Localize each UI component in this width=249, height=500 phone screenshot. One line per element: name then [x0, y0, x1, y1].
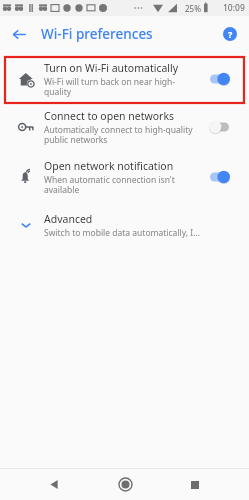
button[interactable]: Toggle on	[208, 168, 238, 186]
staticText: Wi-Fi will turn back on near high-qualit…	[44, 76, 201, 98]
button[interactable]: Open network notification	[0, 152, 249, 202]
button[interactable]: Connect to open networks	[0, 102, 249, 152]
button[interactable]: Back	[5, 20, 33, 48]
staticText: When automatic connection isn't availabl…	[44, 174, 175, 196]
staticText: Automatically connect to high-quality pu…	[44, 124, 193, 146]
staticText: Advanced	[44, 212, 93, 226]
button[interactable]: Back	[37, 469, 71, 500]
button[interactable]: Expand advanced	[0, 202, 249, 248]
button[interactable]: Turn on Wi-Fi automatically	[0, 56, 249, 102]
staticText: Turn on Wi-Fi automatically	[44, 61, 179, 75]
button[interactable]: Expand advanced	[16, 215, 36, 235]
button[interactable]: Toggle off	[208, 118, 238, 136]
staticText: Wi-Fi preferences	[41, 25, 153, 43]
staticText: ?	[228, 28, 233, 40]
staticText: 10:09	[223, 2, 245, 14]
button[interactable]: Help	[217, 21, 243, 47]
staticText: 25%	[185, 3, 201, 14]
staticText: Connect to open networks	[44, 109, 175, 123]
staticText: Open network notification	[44, 159, 174, 173]
button[interactable]: Recent apps	[178, 469, 212, 500]
staticText: Switch to mobile data automatically, Ins…	[44, 227, 201, 239]
button[interactable]: Home	[108, 469, 142, 500]
button[interactable]: Toggle on	[208, 70, 238, 88]
